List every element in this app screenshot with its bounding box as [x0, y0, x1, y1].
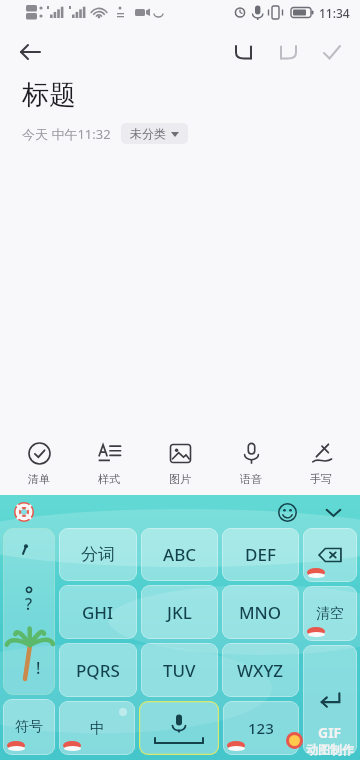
staticText: 分词 [81, 544, 115, 565]
button[interactable]: Hide keyboard [318, 497, 348, 527]
staticText: 手写 [310, 472, 332, 486]
staticText: 语音 [240, 472, 262, 486]
button[interactable]: GHI [59, 585, 137, 639]
button[interactable]: JKL [141, 585, 218, 639]
staticText: GHI [82, 601, 114, 624]
staticText: ! [36, 657, 41, 679]
staticText: WXYZ [237, 659, 284, 682]
button[interactable]: PQRS [59, 643, 137, 697]
staticText: 123 [248, 718, 274, 738]
staticText: 图片 [169, 472, 191, 486]
staticText: 中 [90, 719, 105, 738]
button[interactable]: Emoji [272, 497, 302, 527]
staticText: 今天 中午11:32 [22, 125, 111, 143]
button[interactable]: Save [310, 30, 354, 74]
staticText: ABC [163, 543, 197, 566]
staticText: 清空 [316, 605, 344, 623]
button[interactable]: 未分类 [121, 123, 188, 144]
button[interactable]: 符号 [3, 699, 55, 755]
staticText: MNO [239, 601, 282, 624]
button[interactable]: ABC [141, 528, 218, 581]
staticText: PQRS [76, 659, 120, 682]
staticText: 样式 [98, 472, 120, 486]
button[interactable]: Back [8, 30, 52, 74]
staticText: 符号 [15, 718, 43, 736]
staticText: 未分类 [130, 126, 166, 141]
button[interactable]: 清空 [303, 586, 357, 641]
staticText: 11:34 [319, 5, 350, 21]
staticText: GIF [318, 723, 342, 742]
button[interactable]: TUV [141, 643, 218, 697]
staticText: TUV [163, 659, 196, 682]
button[interactable]: Undo [222, 30, 266, 74]
button[interactable]: Redo [266, 30, 310, 74]
button[interactable]: WXYZ [222, 643, 299, 697]
button[interactable]: 图片 [148, 438, 212, 490]
staticText: 动图制作 [306, 742, 354, 757]
button[interactable]: Punctuation [3, 528, 55, 695]
button[interactable]: Space and voice input [139, 701, 219, 755]
button[interactable]: 样式 [77, 438, 141, 490]
staticText: 清单 [28, 472, 50, 486]
button[interactable]: Backspace [303, 528, 357, 582]
button[interactable]: 中 [59, 701, 135, 755]
staticText: 标题 [22, 78, 76, 112]
staticText: DEF [245, 543, 276, 566]
button[interactable]: MNO [222, 585, 299, 639]
staticText: JKL [167, 601, 192, 624]
button[interactable]: 语音 [219, 438, 283, 490]
button[interactable]: 手写 [289, 438, 353, 490]
button[interactable]: 分词 [59, 528, 137, 581]
button[interactable]: DEF [222, 528, 299, 581]
button[interactable]: 清单 [7, 438, 71, 490]
button[interactable]: Enter [303, 645, 357, 755]
staticText: ? [25, 593, 33, 615]
button[interactable]: Input method settings [10, 498, 38, 526]
button[interactable]: 123 [223, 701, 299, 755]
